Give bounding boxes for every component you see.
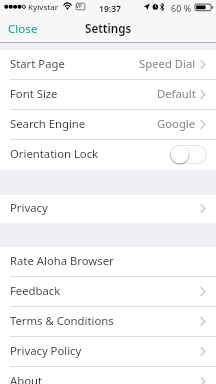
staticText: Terms & Conditions <box>10 313 114 328</box>
staticText: Google <box>157 116 196 131</box>
staticText: Kyivstar <box>28 2 59 13</box>
button[interactable]: Orientation Lock <box>170 145 207 164</box>
button[interactable]: Privacy <box>0 195 216 223</box>
button[interactable]: Rate Aloha Browser <box>0 247 216 277</box>
staticText: About <box>10 373 43 384</box>
button[interactable]: Search Engine <box>0 110 216 140</box>
staticText: Close <box>8 21 38 37</box>
staticText: 19:37 <box>99 3 122 15</box>
staticText: Privacy <box>10 200 48 215</box>
button[interactable]: Close <box>0 16 48 42</box>
staticText: Orientation Lock <box>10 146 99 161</box>
staticText: VPN <box>76 3 85 10</box>
button[interactable]: Feedback <box>0 277 216 307</box>
staticText: Start Page <box>10 56 65 71</box>
staticText: Feedback <box>10 283 61 298</box>
staticText: Font Size <box>10 86 58 101</box>
staticText: Settings <box>85 21 132 37</box>
staticText: 60 % <box>171 2 192 14</box>
staticText: Search Engine <box>10 116 86 131</box>
button[interactable]: Orientation Lock <box>0 140 216 170</box>
button[interactable]: Terms & Conditions <box>0 307 216 337</box>
button[interactable]: Font Size <box>0 80 216 110</box>
staticText: Speed Dial <box>139 56 196 71</box>
staticText: Default <box>157 86 196 101</box>
button[interactable]: About <box>0 367 216 384</box>
button[interactable]: Start Page <box>0 50 216 80</box>
staticText: Rate Aloha Browser <box>10 253 114 268</box>
staticText: Privacy Policy <box>10 343 82 358</box>
button[interactable]: Privacy Policy <box>0 337 216 367</box>
